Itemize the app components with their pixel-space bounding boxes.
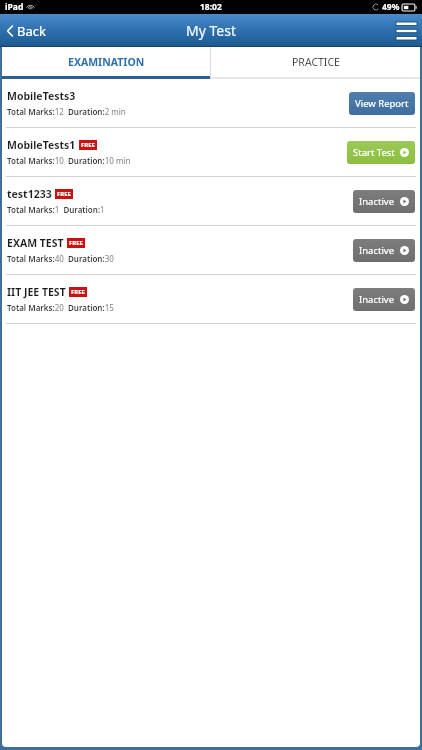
staticText: Total Marks:20 Duration:15 [7, 302, 114, 313]
button[interactable]: MobileTests1 [2, 128, 420, 176]
button[interactable]: Menu [391, 18, 422, 44]
staticText: Inactive [359, 195, 395, 208]
button[interactable]: EXAM TEST [2, 226, 420, 274]
staticText: FREE [81, 141, 95, 149]
button[interactable]: test1233 [2, 177, 420, 225]
button[interactable]: IIT JEE TEST [2, 275, 420, 323]
button[interactable]: EXAMINATION [2, 47, 210, 79]
staticText: EXAMINATION [68, 55, 145, 69]
staticText: Total Marks:12 Duration:2 min [7, 106, 126, 117]
button[interactable]: Back [0, 18, 56, 44]
button[interactable]: Inactive [353, 239, 415, 262]
staticText: Inactive [359, 244, 395, 257]
button[interactable]: View Report [349, 92, 415, 115]
staticText: Total Marks:10 Duration:10 min [7, 155, 131, 166]
staticText: test1233 [7, 187, 52, 201]
staticText: FREE [71, 288, 85, 296]
button[interactable]: Inactive [353, 190, 415, 213]
staticText: FREE [69, 239, 83, 247]
staticText: Back [17, 22, 46, 40]
staticText: 49% [382, 1, 400, 13]
staticText: EXAM TEST [7, 236, 64, 250]
staticText: PRACTICE [292, 55, 340, 69]
staticText: Start Test [353, 146, 395, 159]
button[interactable]: PRACTICE [211, 47, 420, 79]
staticText: Inactive [359, 293, 395, 306]
button[interactable]: Inactive [353, 288, 415, 311]
staticText: View Report [355, 97, 409, 110]
staticText: Total Marks:1 Duration:1 [7, 204, 105, 215]
staticText: iPad [5, 1, 24, 13]
staticText: FREE [57, 190, 71, 198]
staticText: MobileTests1 [7, 138, 76, 152]
staticText: Total Marks:40 Duration:30 [7, 253, 114, 264]
button[interactable]: MobileTests3 [2, 79, 420, 127]
button[interactable]: Start Test [347, 141, 415, 164]
staticText: 18:02 [200, 1, 222, 13]
staticText: IIT JEE TEST [7, 285, 66, 299]
staticText: My Test [186, 21, 236, 40]
staticText: MobileTests3 [7, 89, 76, 103]
